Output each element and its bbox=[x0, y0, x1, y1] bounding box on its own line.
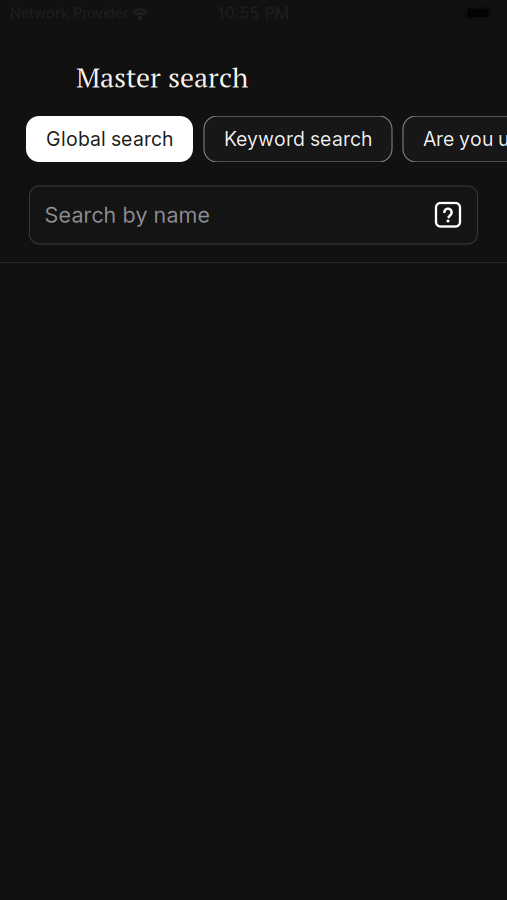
staticText: Keyword search bbox=[224, 127, 372, 151]
staticText: 10:55 PM bbox=[217, 3, 289, 23]
staticText: Global search bbox=[46, 127, 173, 151]
button[interactable]: Help bbox=[435, 202, 460, 227]
staticText: Are you up for a call? bbox=[423, 127, 507, 151]
staticText: Master search bbox=[76, 58, 248, 96]
button[interactable]: Are you up for a call? bbox=[403, 116, 507, 162]
button[interactable]: Global search bbox=[26, 116, 193, 162]
staticText: Network Provider bbox=[10, 4, 128, 22]
staticText: Search by name bbox=[44, 202, 209, 228]
button[interactable]: Keyword search bbox=[204, 116, 392, 162]
